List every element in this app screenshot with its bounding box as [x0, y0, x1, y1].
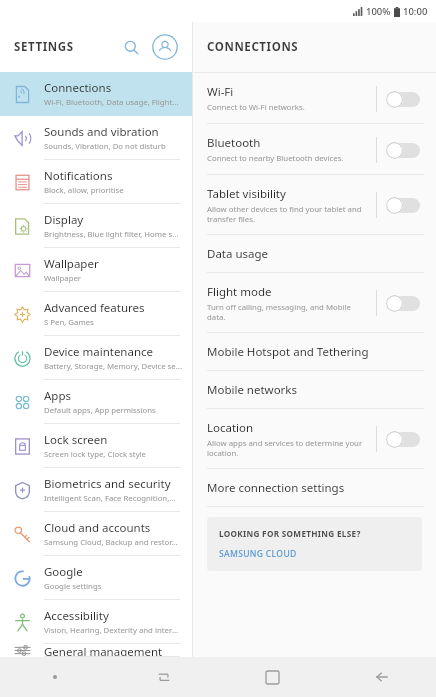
- button[interactable]: Recents: [109, 657, 218, 697]
- button[interactable]: Wi-Fi toggle: [386, 87, 426, 111]
- staticText: More connection settings: [207, 480, 345, 496]
- staticText: Default apps, App permissions: [44, 405, 156, 416]
- staticText: S Pen, Games: [44, 317, 94, 328]
- button[interactable]: Location: [193, 409, 436, 469]
- button[interactable]: Flight mode toggle: [386, 291, 426, 315]
- staticText: Sounds, Vibration, Do not disturb: [44, 141, 166, 152]
- staticText: Allow other devices to find your tablet …: [207, 204, 370, 224]
- staticText: Sounds and vibration: [44, 124, 159, 140]
- button[interactable]: Menu indicator: [0, 657, 109, 697]
- staticText: Allow apps and services to determine you…: [207, 438, 370, 458]
- staticText: Wi-Fi: [207, 84, 234, 100]
- staticText: Wallpaper: [44, 256, 99, 272]
- button[interactable]: Search: [116, 32, 146, 62]
- staticText: Advanced features: [44, 300, 145, 316]
- button[interactable]: Google: [0, 556, 192, 600]
- button[interactable]: Tablet visibility: [193, 175, 436, 235]
- staticText: Samsung Cloud, Backup and restor...: [44, 537, 178, 548]
- button[interactable]: Advanced features: [0, 292, 192, 336]
- button[interactable]: More connection settings: [193, 469, 436, 507]
- button[interactable]: General management: [0, 644, 192, 657]
- button[interactable]: Home: [218, 657, 327, 697]
- button[interactable]: Tablet visibility toggle: [386, 193, 426, 217]
- staticText: Turn off calling, messaging, and Mobile …: [207, 302, 370, 322]
- button[interactable]: Biometrics and security: [0, 468, 192, 512]
- button[interactable]: Flight mode: [193, 273, 436, 333]
- staticText: Display: [44, 212, 84, 228]
- staticText: Accessibility: [44, 608, 109, 624]
- staticText: 10:00: [403, 5, 428, 18]
- staticText: Block, allow, prioritise: [44, 185, 124, 196]
- staticText: Cloud and accounts: [44, 520, 151, 536]
- button[interactable]: Mobile Hotspot and Tethering: [193, 333, 436, 371]
- button[interactable]: Location toggle: [386, 427, 426, 451]
- button[interactable]: Bluetooth toggle: [386, 138, 426, 162]
- staticText: Connect to nearby Bluetooth devices.: [207, 153, 344, 164]
- staticText: SAMSUNG CLOUD: [219, 548, 297, 560]
- staticText: Wi-Fi, Bluetooth, Data usage, Flight...: [44, 97, 179, 108]
- staticText: Google: [44, 564, 83, 580]
- button[interactable]: Data usage: [193, 235, 436, 273]
- staticText: 100%: [366, 5, 391, 18]
- staticText: Brightness, Blue light filter, Home sc..…: [44, 229, 182, 240]
- staticText: Data usage: [207, 246, 269, 262]
- button[interactable]: Connections: [0, 72, 192, 116]
- staticText: Device maintenance: [44, 344, 154, 360]
- button[interactable]: LOOKING FOR SOMETHING ELSE?: [207, 517, 422, 571]
- staticText: Vision, Hearing, Dexterity and intera...: [44, 625, 182, 636]
- button[interactable]: Lock screen: [0, 424, 192, 468]
- staticText: Screen lock type, Clock style: [44, 449, 147, 460]
- staticText: Bluetooth: [207, 135, 261, 151]
- staticText: LOOKING FOR SOMETHING ELSE?: [219, 528, 361, 539]
- staticText: General management: [44, 644, 163, 657]
- staticText: Location: [207, 420, 254, 436]
- staticText: CONNECTIONS: [207, 39, 299, 55]
- button[interactable]: Wi-Fi: [193, 73, 436, 124]
- button[interactable]: Accessibility: [0, 600, 192, 644]
- staticText: SETTINGS: [14, 39, 74, 55]
- staticText: Mobile networks: [207, 382, 298, 398]
- staticText: Lock screen: [44, 432, 108, 448]
- button[interactable]: Mobile networks: [193, 371, 436, 409]
- button[interactable]: Sounds and vibration: [0, 116, 192, 160]
- button[interactable]: Wallpaper: [0, 248, 192, 292]
- staticText: Apps: [44, 388, 72, 404]
- button[interactable]: Back: [327, 657, 436, 697]
- button[interactable]: Account: [150, 32, 180, 62]
- staticText: Battery, Storage, Memory, Device se...: [44, 361, 182, 372]
- button[interactable]: Cloud and accounts: [0, 512, 192, 556]
- staticText: Flight mode: [207, 284, 272, 300]
- button[interactable]: Device maintenance: [0, 336, 192, 380]
- staticText: Intelligent Scan, Face Recognition,...: [44, 493, 176, 504]
- staticText: Google settings: [44, 581, 102, 592]
- button[interactable]: Bluetooth: [193, 124, 436, 175]
- button[interactable]: Apps: [0, 380, 192, 424]
- staticText: Mobile Hotspot and Tethering: [207, 344, 369, 360]
- staticText: Notifications: [44, 168, 113, 184]
- staticText: Wallpaper: [44, 273, 82, 284]
- button[interactable]: Notifications: [0, 160, 192, 204]
- staticText: Tablet visibility: [207, 186, 286, 202]
- staticText: Connect to Wi-Fi networks.: [207, 102, 305, 113]
- button[interactable]: Display: [0, 204, 192, 248]
- staticText: Connections: [44, 80, 112, 96]
- staticText: Biometrics and security: [44, 476, 171, 492]
